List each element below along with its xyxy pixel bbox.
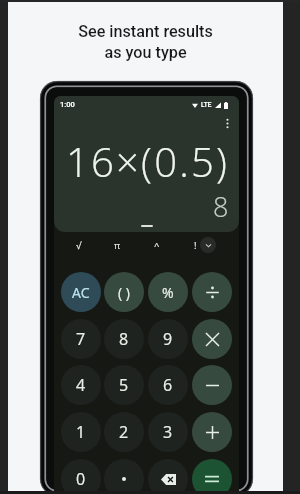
button[interactable]: 3	[148, 412, 188, 452]
button[interactable]: 7	[61, 319, 101, 359]
button[interactable]: 9	[148, 319, 188, 359]
staticText: 3	[163, 421, 173, 443]
button[interactable]: Percent	[148, 272, 188, 312]
button[interactable]: !	[181, 233, 209, 257]
button[interactable]: Plus	[192, 412, 232, 452]
button[interactable]: Parentheses	[104, 272, 144, 312]
staticText: 9	[163, 328, 173, 350]
button[interactable]: √	[65, 233, 93, 257]
staticText: !	[194, 239, 197, 252]
button[interactable]: 8	[104, 319, 144, 359]
button[interactable]: 5	[104, 365, 144, 405]
staticText: 4	[76, 374, 86, 396]
button[interactable]: π	[103, 233, 131, 257]
button[interactable]: Equals	[192, 459, 232, 494]
staticText: as you type	[104, 43, 187, 62]
staticText: 0	[76, 468, 86, 490]
staticText: 6	[163, 374, 173, 396]
staticText: 2	[119, 421, 129, 443]
staticText: ^	[154, 239, 160, 252]
staticText: 16×(0.5)	[66, 134, 230, 188]
button[interactable]: 0	[61, 459, 101, 494]
staticText: √	[76, 239, 82, 252]
button[interactable]: Minus	[192, 365, 232, 405]
staticText: 1	[76, 421, 86, 443]
staticText: AC	[72, 283, 90, 302]
button[interactable]: Multiply	[192, 319, 232, 359]
staticText: 8	[213, 188, 229, 225]
button[interactable]: Show more functions	[200, 237, 216, 253]
button[interactable]: 2	[104, 412, 144, 452]
button[interactable]: AC	[61, 272, 101, 312]
button[interactable]: 6	[148, 365, 188, 405]
staticText: 7	[76, 328, 86, 350]
button[interactable]: ^	[143, 233, 171, 257]
staticText: See instant results	[78, 22, 213, 41]
button[interactable]: Divide	[192, 272, 232, 312]
button[interactable]: 1	[61, 412, 101, 452]
staticText: 8	[119, 328, 129, 350]
staticText: 1:00	[60, 100, 75, 109]
staticText: π	[114, 239, 121, 252]
button[interactable]: More options	[220, 116, 234, 130]
button[interactable]: Backspace	[148, 459, 188, 494]
staticText: LTE	[201, 101, 212, 109]
staticText: ( )	[118, 283, 130, 302]
staticText: 5	[119, 374, 129, 396]
button[interactable]: Decimal point	[104, 459, 144, 494]
button[interactable]: 4	[61, 365, 101, 405]
staticText: %	[162, 283, 174, 302]
